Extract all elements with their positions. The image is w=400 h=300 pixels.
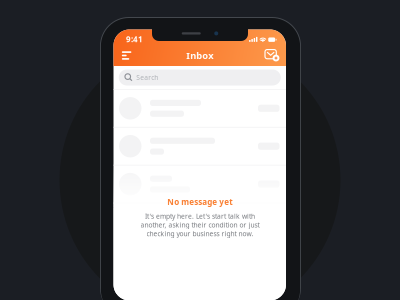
button[interactable] (113, 90, 286, 127)
staticText: Search (136, 73, 158, 82)
button[interactable]: Search (119, 69, 281, 85)
button[interactable] (113, 203, 286, 241)
button[interactable]: Menu (113, 46, 144, 65)
staticText: 9:41 (126, 34, 143, 44)
staticText: No message yet (167, 196, 232, 207)
button[interactable] (113, 128, 286, 165)
staticText: Inbox (186, 49, 213, 62)
button[interactable] (113, 165, 286, 203)
staticText: It's empty here. Let's start talk with a… (140, 212, 259, 238)
button[interactable]: Compose message (257, 46, 286, 65)
